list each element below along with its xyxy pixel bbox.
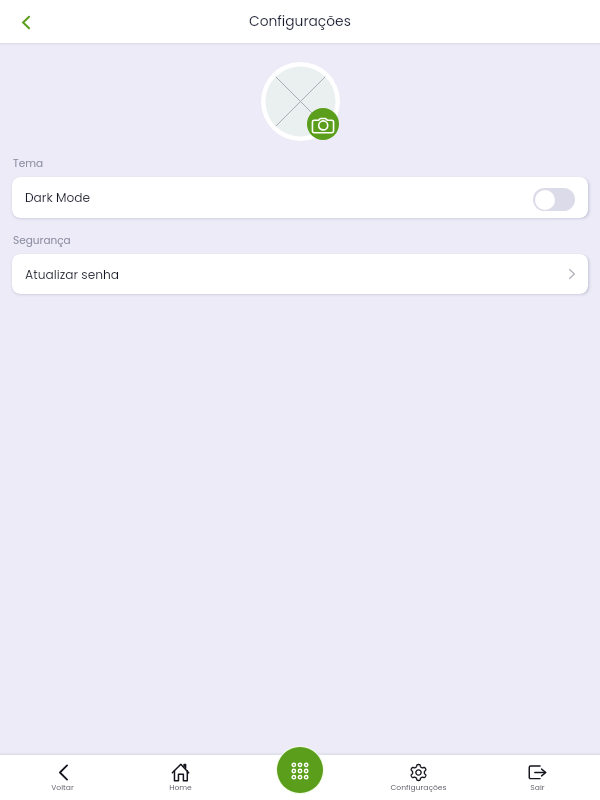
button[interactable]: Alternar Dark Mode bbox=[533, 188, 575, 211]
button[interactable]: Configurações bbox=[359, 755, 478, 800]
button[interactable]: Alterar foto bbox=[307, 108, 339, 140]
button[interactable]: Menu bbox=[277, 747, 323, 793]
button[interactable]: Home bbox=[121, 755, 240, 800]
button[interactable]: Atualizar senha bbox=[12, 254, 588, 294]
button[interactable]: Voltar bbox=[3, 755, 121, 800]
button[interactable]: Sair bbox=[478, 755, 597, 800]
staticText: Dark Mode bbox=[25, 189, 91, 206]
staticText: Voltar bbox=[51, 782, 74, 793]
staticText: Segurança bbox=[13, 233, 71, 248]
button[interactable]: Dark Mode bbox=[12, 177, 588, 218]
staticText: Sair bbox=[530, 782, 545, 793]
staticText: Configurações bbox=[390, 782, 447, 793]
staticText: Configurações bbox=[249, 12, 351, 31]
button[interactable]: Voltar bbox=[0, 0, 52, 43]
staticText: Home bbox=[169, 782, 192, 793]
staticText: Tema bbox=[13, 156, 44, 171]
staticText: Atualizar senha bbox=[25, 266, 120, 283]
